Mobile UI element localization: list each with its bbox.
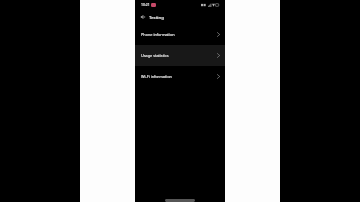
- staticText: Usage statistics: [141, 53, 169, 58]
- button[interactable]: Wi-Fi information: [135, 66, 225, 87]
- staticText: 10:21: [141, 2, 150, 7]
- staticText: Wi-Fi information: [141, 74, 172, 79]
- button[interactable]: Usage statistics: [135, 45, 225, 66]
- staticText: Phone information: [141, 32, 175, 37]
- staticText: Testing: [149, 14, 164, 20]
- button[interactable]: Back: [138, 12, 147, 21]
- button[interactable]: Phone information: [135, 24, 225, 45]
